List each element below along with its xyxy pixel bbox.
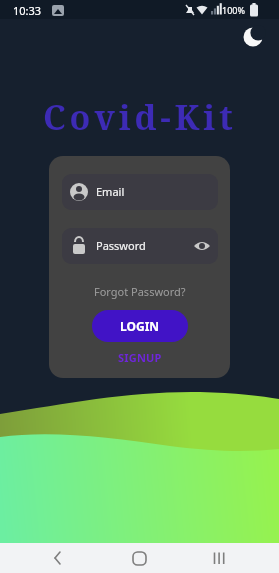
staticText: LOGIN xyxy=(120,318,160,334)
staticText: Password xyxy=(96,238,146,253)
button[interactable] xyxy=(0,543,93,573)
button[interactable]: Email xyxy=(62,174,218,210)
staticText: Covid-Kit xyxy=(43,94,237,140)
button[interactable]: SIGNUP xyxy=(118,350,162,365)
button[interactable] xyxy=(240,24,268,52)
button[interactable] xyxy=(186,543,279,573)
button[interactable] xyxy=(93,543,186,573)
button[interactable]: Password xyxy=(62,228,218,264)
staticText: Email xyxy=(96,184,125,199)
button[interactable]: LOGIN xyxy=(92,310,188,342)
staticText: 100% xyxy=(222,4,245,16)
staticText: 10:33 xyxy=(13,3,42,18)
button[interactable]: Forgot Password? xyxy=(94,284,186,299)
